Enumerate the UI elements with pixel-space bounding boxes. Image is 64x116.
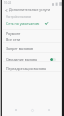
staticText: 10:24 <box>4 1 12 5</box>
staticText: Запрет вызовов <box>6 46 34 51</box>
staticText: Роуминг <box>6 31 21 36</box>
button[interactable]: Переадресация вызова <box>3 65 61 71</box>
staticText: Все сети <box>6 37 21 42</box>
staticText: Переадресация вызова <box>6 66 46 71</box>
button[interactable]: Настройки вызовов <box>3 15 31 19</box>
button[interactable]: Запрет вызовов <box>3 45 61 51</box>
button[interactable]: Все сети <box>3 36 61 42</box>
button[interactable]: Недавние приложения <box>12 106 20 114</box>
staticText: Дополнительные услуги <box>9 7 51 12</box>
button[interactable]: Роуминг <box>3 30 61 36</box>
button[interactable]: Назад <box>45 106 53 114</box>
staticText: Сеть по умолчанию <box>6 21 40 26</box>
button[interactable]: Ожидание вызова <box>3 56 61 62</box>
staticText: Настройки вызовов <box>6 15 31 19</box>
button[interactable]: Сеть по умолчанию <box>3 20 61 26</box>
button[interactable]: Главный экран <box>28 106 36 114</box>
button[interactable]: Назад <box>3 7 9 13</box>
staticText: Ожидание вызова <box>6 57 38 62</box>
